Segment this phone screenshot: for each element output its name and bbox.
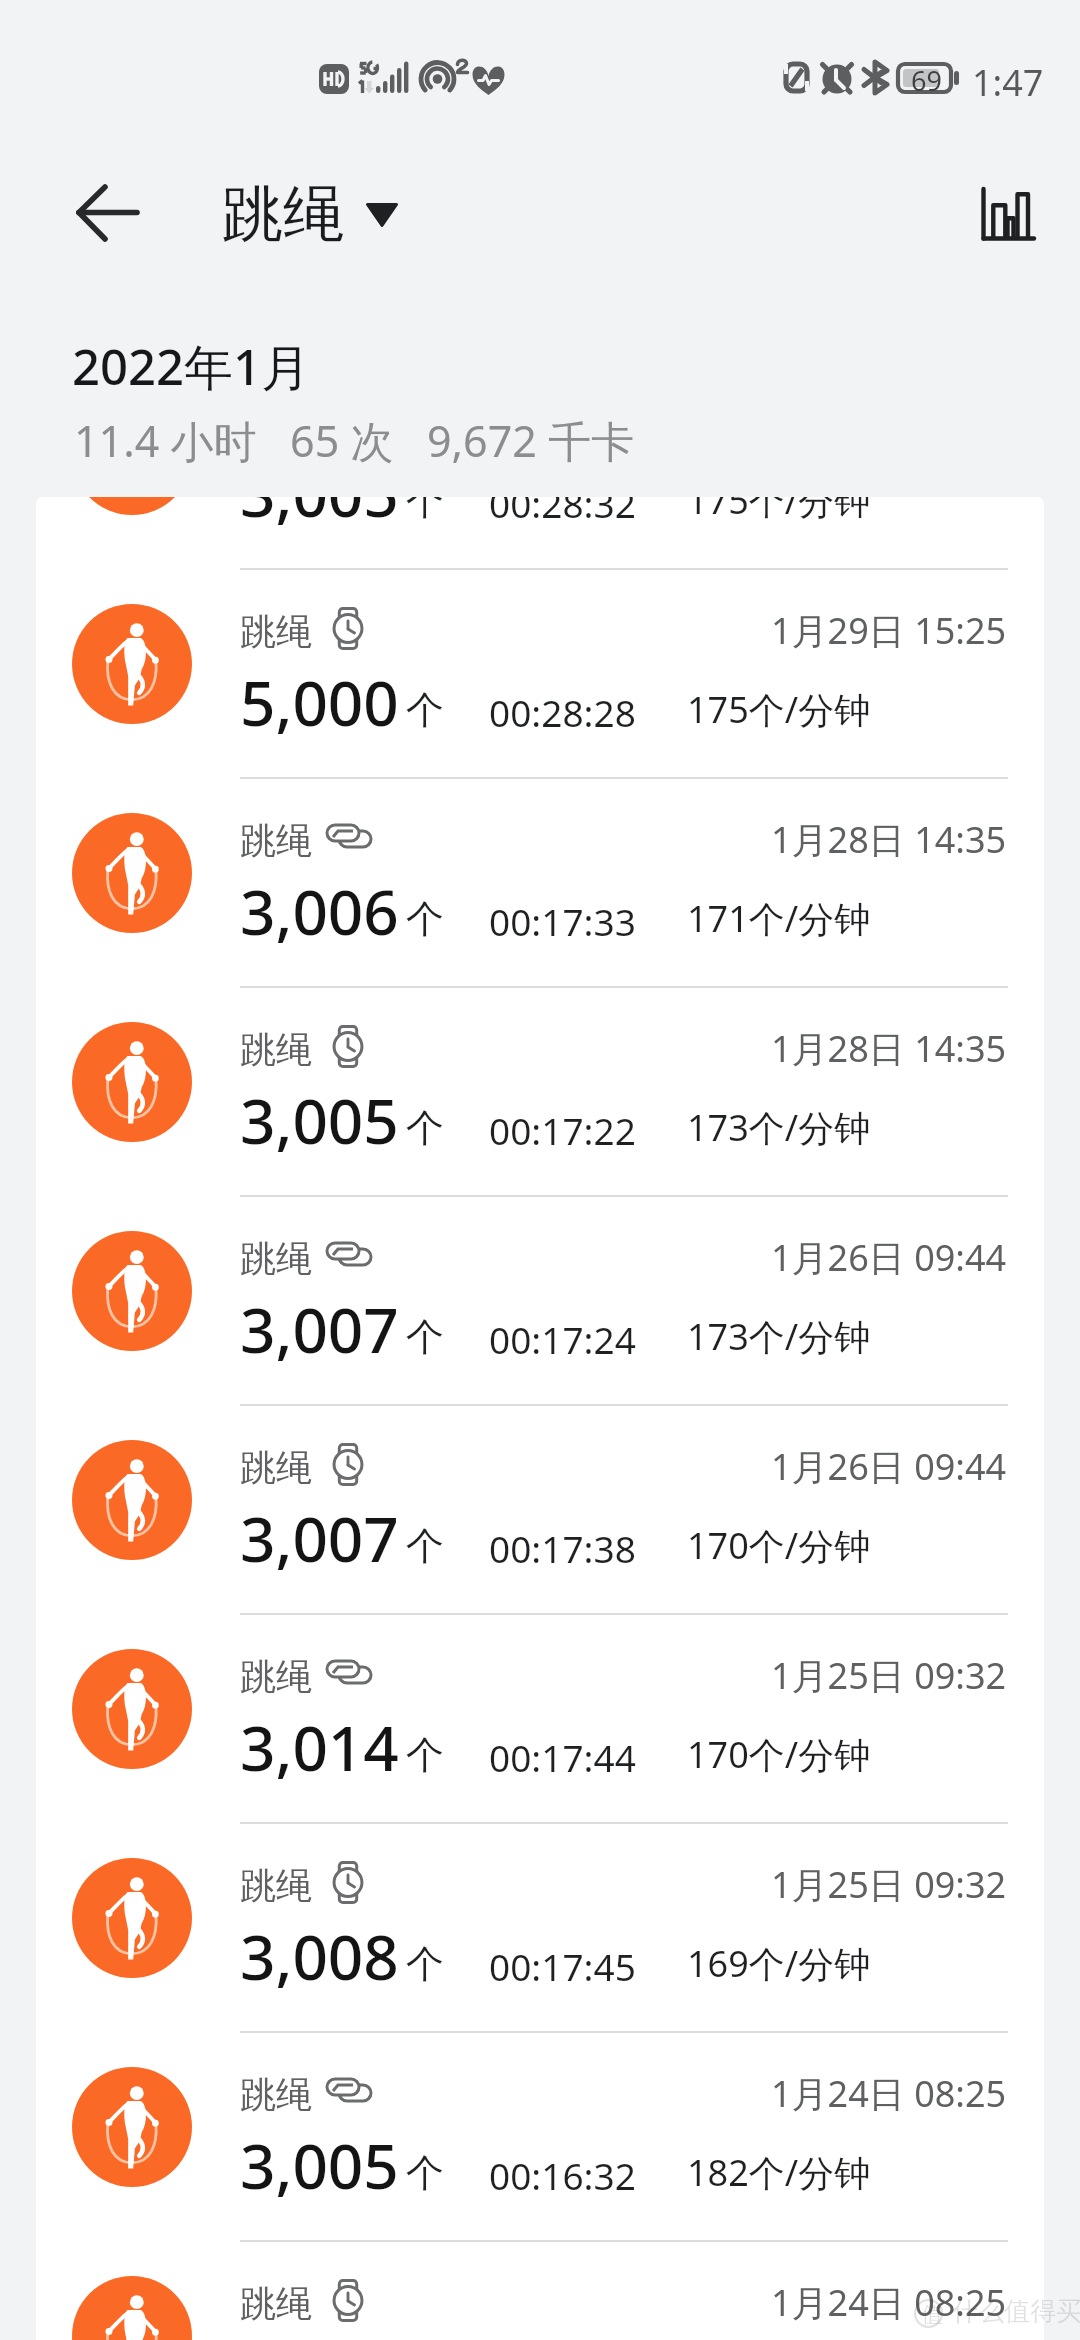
staticText: 跳绳 [240, 2281, 312, 2326]
button[interactable]: 跳绳 [36, 568, 1044, 777]
staticText: 3,007 [240, 1496, 399, 1580]
staticText: 个 [406, 2149, 444, 2197]
staticText: 00:17:33 [489, 896, 636, 946]
button[interactable]: 跳绳 [36, 777, 1044, 986]
staticText: 00:17:22 [489, 1105, 636, 1155]
staticText: 1月28日 14:35 [771, 1024, 1007, 1073]
staticText: 个 [406, 1731, 444, 1779]
staticText: 3,006 [240, 869, 399, 953]
button[interactable]: Back [48, 168, 140, 260]
staticText: 00:17:45 [489, 1941, 636, 1991]
staticText: 个 [406, 497, 444, 525]
staticText: 170个/分钟 [687, 1521, 871, 1570]
staticText: 5,000 [240, 660, 399, 744]
staticText: 跳绳 [240, 2072, 312, 2117]
staticText: 00:16:32 [489, 2150, 636, 2200]
staticText: 00:17:44 [489, 1732, 636, 1782]
staticText: 00:28:28 [489, 687, 636, 737]
staticText: 175个/分钟 [687, 497, 871, 525]
staticText: 173个/分钟 [687, 1312, 871, 1361]
button[interactable]: 跳绳 [36, 1822, 1044, 2031]
staticText: 值 [921, 2301, 943, 2329]
staticText: 1月24日 08:25 [771, 2278, 1007, 2327]
button[interactable]: 跳绳 [36, 986, 1044, 1195]
staticText: 1月24日 08:25 [771, 2069, 1007, 2118]
staticText: 个 [406, 1104, 444, 1152]
staticText: 跳绳 [240, 1654, 312, 1699]
staticText: 182个/分钟 [687, 2148, 871, 2197]
staticText: 171个/分钟 [687, 894, 871, 943]
staticText: 1月29日 15:25 [771, 606, 1007, 655]
button[interactable]: 跳绳 [36, 1404, 1044, 1613]
staticText: 什么值得买 [952, 2295, 1080, 2328]
staticText: 3,005 [240, 2123, 399, 2207]
staticText: 个 [406, 686, 444, 734]
staticText: 3,005 [240, 1078, 399, 1162]
staticText: 2022年1月 [72, 333, 311, 400]
staticText: 跳绳 [240, 1863, 312, 1908]
staticText: 跳绳 [240, 1445, 312, 1490]
staticText: 1月28日 14:35 [771, 815, 1007, 864]
staticText: 1月25日 09:32 [771, 1651, 1007, 1700]
staticText: 3,005 [240, 497, 399, 535]
staticText: 175个/分钟 [687, 685, 871, 734]
button[interactable]: 跳绳 [36, 1613, 1044, 1822]
staticText: 跳绳 [240, 609, 312, 654]
button[interactable]: 跳绳 [214, 176, 406, 253]
staticText: 个 [406, 1313, 444, 1361]
staticText: 170个/分钟 [687, 1730, 871, 1779]
staticText: 个 [406, 1522, 444, 1570]
staticText: 00:17:38 [489, 1523, 636, 1573]
staticText: 3,008 [240, 1914, 399, 1998]
button[interactable]: 跳绳 [36, 497, 1044, 568]
button[interactable]: 跳绳 [36, 2031, 1044, 2240]
staticText: 跳绳 [240, 818, 312, 863]
button[interactable]: 跳绳 [36, 2240, 1044, 2340]
staticText: 1:47 [972, 58, 1044, 107]
staticText: 3,007 [240, 1287, 399, 1371]
staticText: 11.4 小时 65 次 9,672 千卡 [74, 411, 635, 470]
staticText: 173个/分钟 [687, 1103, 871, 1152]
staticText: 个 [406, 1940, 444, 1988]
staticText: 跳绳 [240, 1027, 312, 1072]
staticText: 1月25日 09:32 [771, 1860, 1007, 1909]
button[interactable]: Statistics [960, 167, 1056, 263]
staticText: 1月26日 09:44 [771, 1233, 1007, 1282]
staticText: 00:28:32 [489, 497, 636, 528]
staticText: 69 [911, 62, 942, 99]
staticText: 1月26日 09:44 [771, 1442, 1007, 1491]
button[interactable]: 跳绳 [36, 1195, 1044, 1404]
staticText: 个 [406, 895, 444, 943]
staticText: 跳绳 [222, 176, 344, 253]
staticText: 00:17:24 [489, 1314, 636, 1364]
staticText: 3,014 [240, 1705, 399, 1789]
staticText: 跳绳 [240, 1236, 312, 1281]
staticText: 169个/分钟 [687, 1939, 871, 1988]
